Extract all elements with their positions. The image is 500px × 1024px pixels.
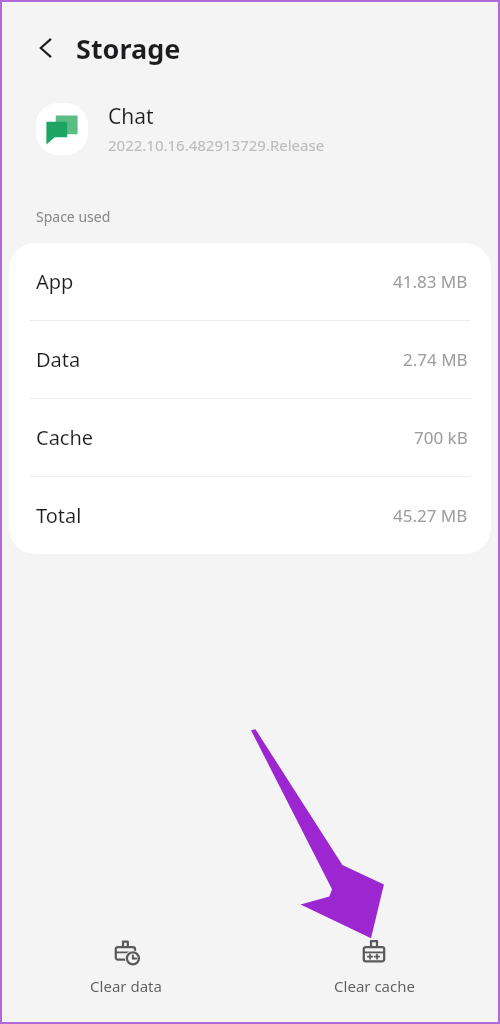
staticText: Storage bbox=[76, 30, 181, 67]
staticText: 700 kB bbox=[414, 426, 468, 449]
button[interactable]: Total bbox=[9, 477, 491, 554]
button[interactable]: Clear cache bbox=[250, 930, 498, 1004]
staticText: 2.74 MB bbox=[403, 348, 468, 371]
button[interactable]: Cache bbox=[9, 399, 491, 476]
staticText: App bbox=[36, 268, 74, 295]
staticText: Cache bbox=[36, 424, 94, 451]
staticText: 41.83 MB bbox=[393, 270, 468, 293]
staticText: Data bbox=[36, 346, 81, 373]
button[interactable]: Clear data bbox=[2, 930, 250, 1004]
staticText: Clear cache bbox=[334, 976, 415, 996]
button[interactable]: Data bbox=[9, 321, 491, 398]
staticText: Chat bbox=[108, 102, 154, 131]
staticText: 2022.10.16.482913729.Release bbox=[108, 135, 325, 155]
staticText: Clear data bbox=[90, 976, 162, 996]
button[interactable]: Back bbox=[24, 26, 68, 70]
staticText: Total bbox=[36, 502, 82, 529]
staticText: Space used bbox=[36, 207, 111, 226]
staticText: 45.27 MB bbox=[393, 504, 468, 527]
button[interactable]: App bbox=[9, 243, 491, 320]
